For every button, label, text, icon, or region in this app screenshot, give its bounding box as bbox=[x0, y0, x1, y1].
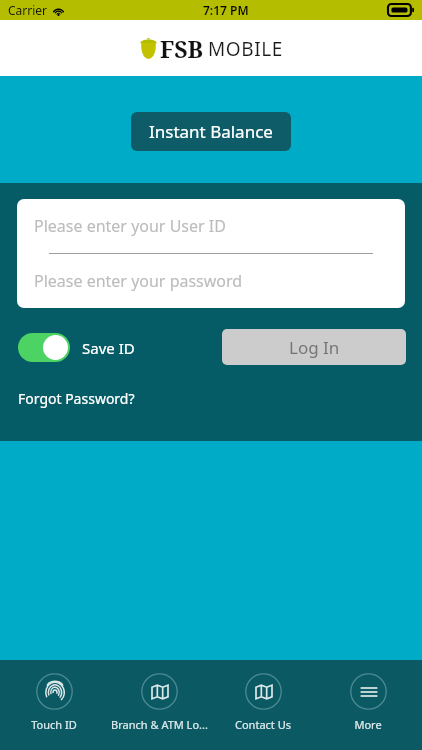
button[interactable]: Contact Us bbox=[213, 660, 313, 732]
button[interactable]: More bbox=[318, 660, 418, 732]
staticText: Branch & ATM Lo... bbox=[111, 717, 208, 732]
staticText: Forgot Password? bbox=[18, 389, 135, 408]
button[interactable]: Save ID bbox=[18, 333, 135, 362]
staticText: More bbox=[354, 717, 382, 732]
staticText: Contact Us bbox=[235, 717, 291, 732]
staticText: Please enter your User ID bbox=[34, 215, 226, 237]
button[interactable]: Touch ID bbox=[4, 660, 104, 732]
button[interactable]: Branch and ATM Locator bbox=[109, 660, 209, 732]
button[interactable]: Instant Balance bbox=[131, 112, 291, 151]
button[interactable]: Forgot Password? bbox=[18, 387, 135, 410]
button[interactable]: Log In bbox=[222, 329, 406, 365]
staticText: Carrier bbox=[8, 2, 48, 18]
button[interactable]: Please enter your User ID bbox=[17, 199, 405, 253]
staticText: Please enter your password bbox=[34, 270, 243, 292]
staticText: 7:17 PM bbox=[203, 2, 249, 18]
staticText: Save ID bbox=[82, 338, 135, 358]
button[interactable]: Please enter your password bbox=[17, 254, 405, 308]
staticText: Instant Balance bbox=[149, 120, 273, 143]
staticText: Log In bbox=[289, 336, 340, 359]
staticText: Touch ID bbox=[31, 717, 77, 732]
staticText: MOBILE bbox=[208, 36, 283, 62]
staticText: FSB bbox=[160, 33, 204, 64]
